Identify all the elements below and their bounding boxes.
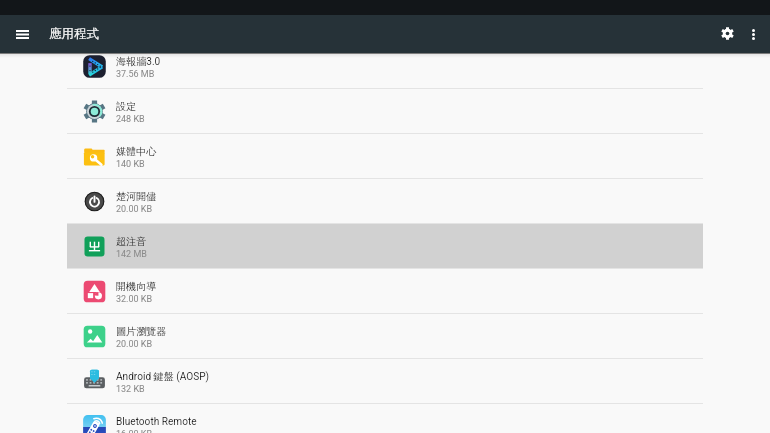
button[interactable]: 圖片瀏覽器 [67, 314, 703, 358]
button[interactable]: Android 鍵盤 (AOSP) [67, 359, 703, 403]
button[interactable]: Navigation menu [0, 15, 44, 53]
staticText: 圖片瀏覽器 [116, 325, 167, 338]
staticText: 楚河閞儘 [116, 190, 157, 203]
button[interactable]: 楚河閞儘 [67, 179, 703, 223]
button[interactable]: Settings [703, 15, 736, 53]
button[interactable]: 設定 [67, 89, 703, 133]
staticText: 132 KB [116, 384, 145, 395]
staticText: 20.00 KB [116, 204, 153, 215]
button[interactable]: More options [736, 15, 770, 53]
staticText: 應用程式 [49, 26, 99, 42]
staticText: Bluetooth Remote [116, 416, 197, 428]
staticText: 媒體中心 [116, 145, 157, 158]
staticText: 設定 [116, 100, 137, 113]
staticText: 142 MB [116, 249, 147, 260]
staticText: 37.56 MB [116, 69, 155, 80]
button[interactable]: 媒體中心 [67, 134, 703, 178]
button[interactable]: 超注音 [67, 224, 703, 268]
button[interactable]: 開機向導 [67, 269, 703, 313]
staticText: 140 KB [116, 159, 145, 170]
staticText: 開機向導 [116, 280, 157, 293]
staticText: Android 鍵盤 (AOSP) [116, 370, 210, 383]
staticText: 32.00 KB [116, 294, 153, 305]
staticText: 20.00 KB [116, 339, 153, 350]
button[interactable]: 海報牆3.0 [67, 44, 703, 88]
staticText: 248 KB [116, 114, 145, 125]
staticText: 超注音 [116, 235, 147, 248]
staticText: 16.00 KB [116, 429, 153, 433]
staticText: 海報牆3.0 [116, 55, 161, 68]
button[interactable]: Bluetooth Remote [67, 404, 703, 433]
